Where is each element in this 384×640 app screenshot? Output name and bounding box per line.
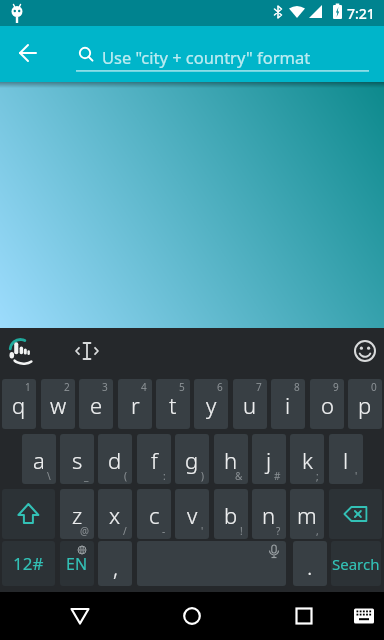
staticText: ? — [276, 524, 281, 538]
staticText: ) — [201, 469, 204, 483]
staticText: # — [274, 469, 281, 483]
staticText: a — [33, 445, 45, 475]
staticText: y — [206, 390, 217, 420]
staticText: 3 — [102, 380, 108, 394]
staticText: ( — [124, 469, 127, 483]
staticText: b — [224, 500, 238, 530]
staticText: l — [343, 445, 349, 475]
staticText: 7:21 — [347, 4, 375, 23]
staticText: f — [151, 445, 158, 475]
staticText: p — [358, 390, 372, 420]
staticText: e — [90, 390, 103, 420]
staticText: c — [149, 500, 160, 530]
staticText: g — [185, 445, 199, 475]
staticText: h — [224, 445, 238, 475]
staticText: z — [72, 500, 83, 530]
staticText: 6 — [217, 380, 223, 394]
staticText: . — [307, 551, 313, 581]
staticText: 8 — [294, 380, 300, 394]
staticText: 2 — [64, 380, 70, 394]
staticText: r — [131, 390, 140, 420]
staticText: / — [123, 524, 127, 538]
staticText: 4 — [141, 380, 147, 394]
staticText: o — [321, 390, 334, 420]
staticText: 1 — [25, 380, 31, 394]
staticText: Search — [332, 554, 380, 574]
staticText: w — [50, 390, 67, 420]
staticText: t — [169, 390, 177, 420]
staticText: & — [235, 469, 243, 483]
staticText: s — [72, 445, 83, 475]
staticText: j — [266, 445, 272, 475]
staticText: ! — [240, 524, 243, 538]
staticText: EN — [66, 553, 88, 575]
staticText: 12# — [13, 552, 44, 575]
staticText: Use "city + country" format — [102, 46, 311, 68]
staticText: , — [316, 524, 319, 538]
staticText: 7 — [256, 380, 262, 394]
staticText: q — [12, 390, 26, 420]
staticText: ' — [355, 469, 358, 483]
staticText: i — [285, 390, 291, 420]
staticText: 9 — [333, 380, 339, 394]
staticText: - — [162, 524, 166, 538]
staticText: ; — [316, 469, 319, 483]
staticText: k — [302, 445, 313, 475]
staticText: 0 — [371, 380, 377, 394]
staticText: 5 — [179, 380, 185, 394]
staticText: @ — [80, 524, 89, 538]
staticText: : — [163, 469, 166, 483]
staticText: n — [262, 500, 276, 530]
staticText: _ — [84, 469, 89, 483]
staticText: m — [297, 500, 317, 530]
staticText: x — [109, 500, 121, 530]
staticText: ' — [201, 524, 204, 538]
staticText: d — [108, 445, 122, 475]
staticText: , — [113, 552, 118, 582]
staticText: u — [243, 390, 257, 420]
staticText: \ — [47, 469, 51, 483]
staticText: v — [187, 500, 198, 530]
